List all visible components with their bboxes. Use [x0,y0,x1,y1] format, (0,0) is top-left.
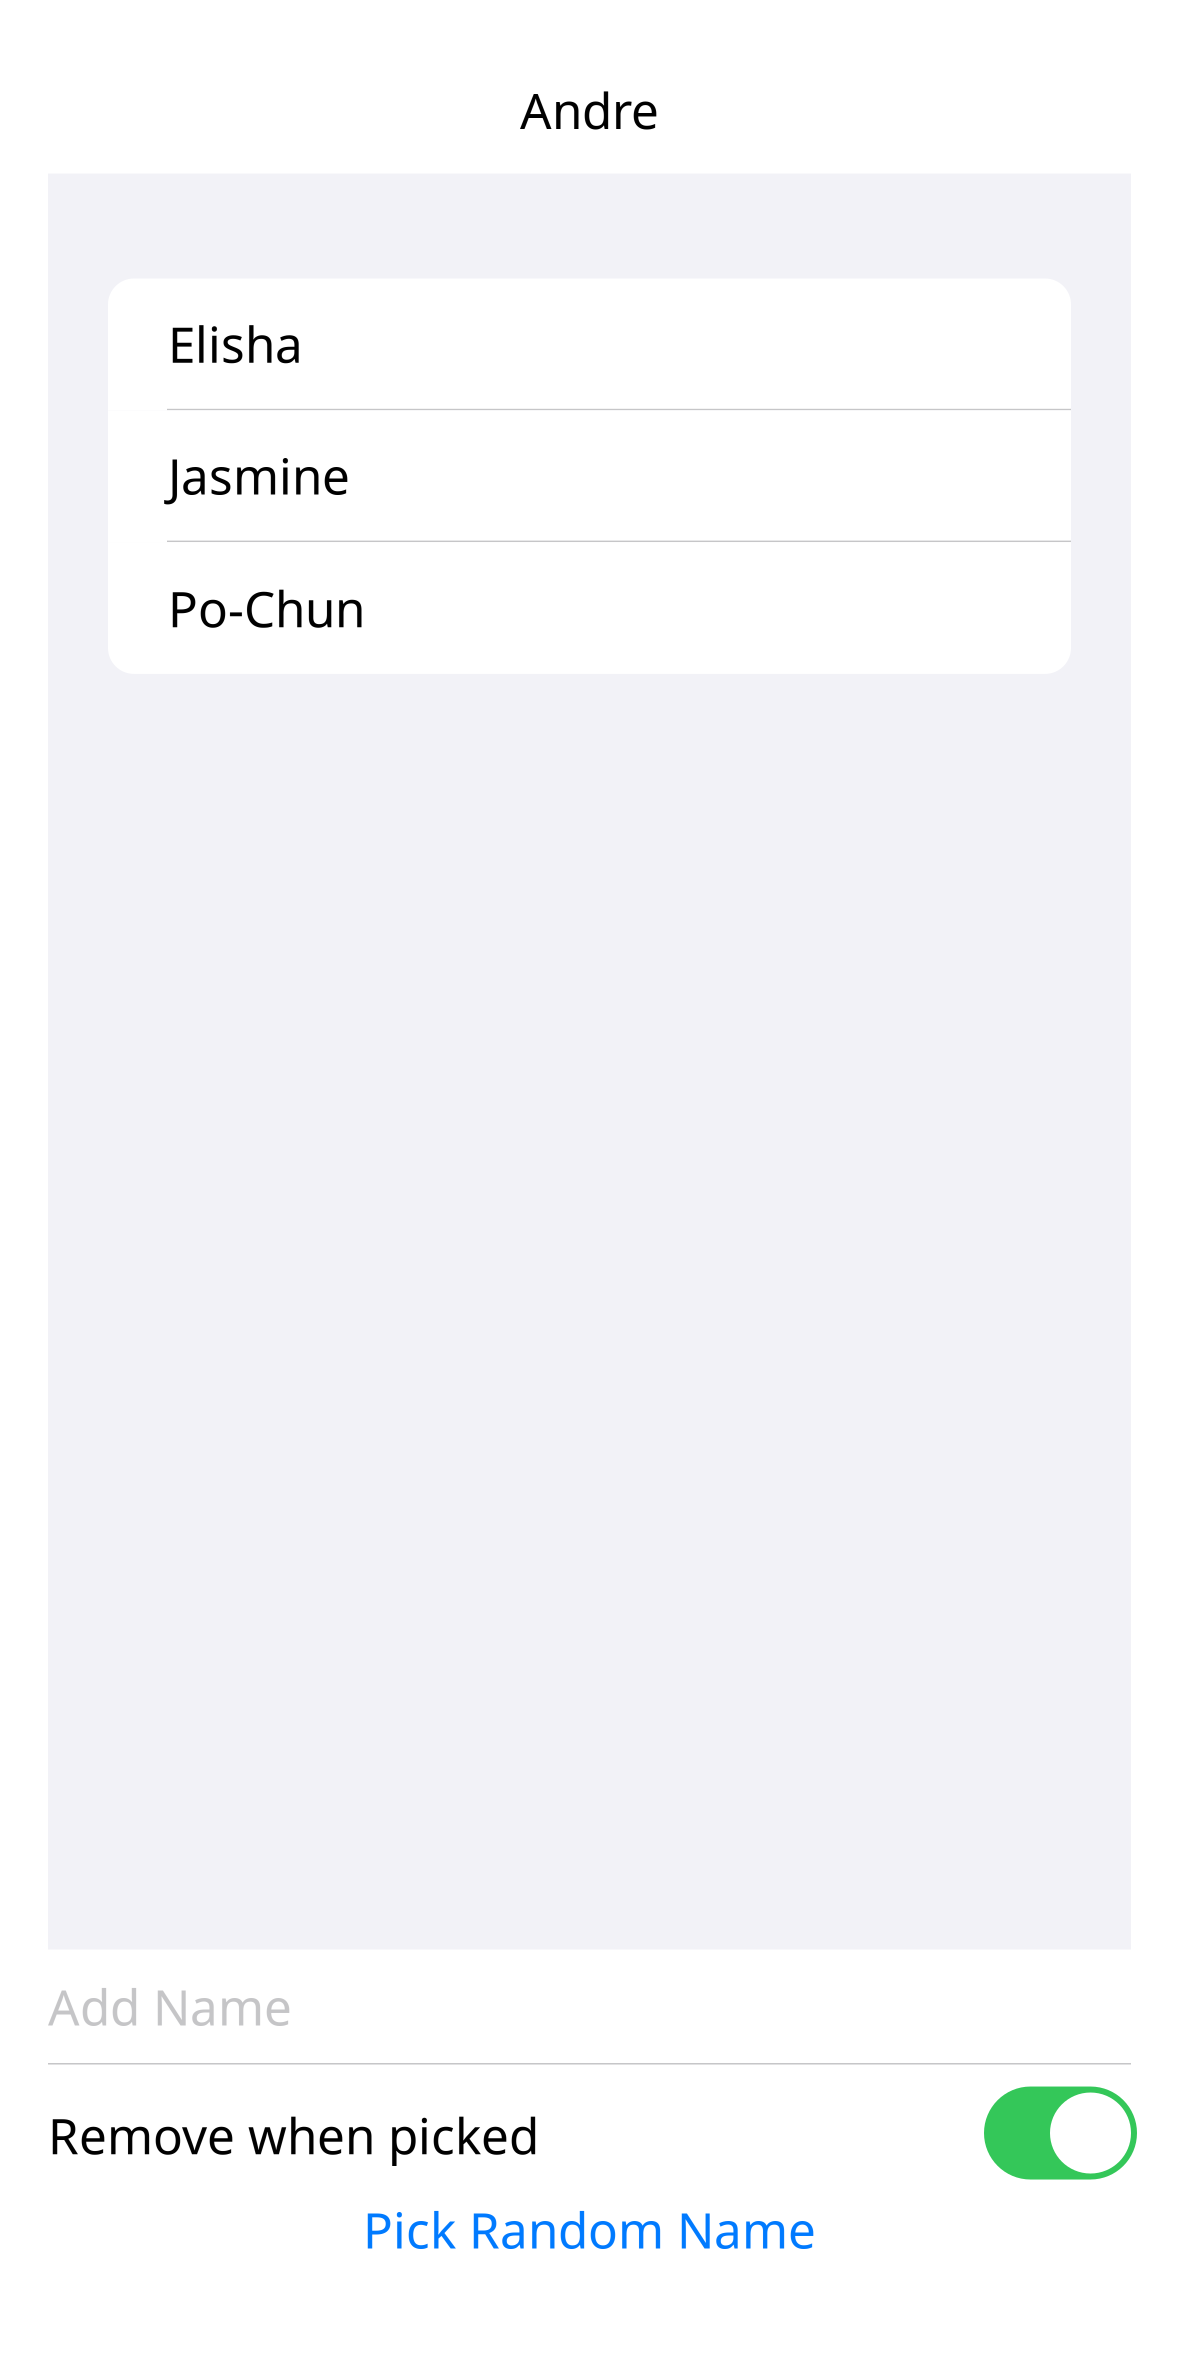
button[interactable]: Remove when picked [0,2064,1179,2179]
staticText: Jasmine [168,443,350,508]
staticText: Pick Random Name [363,2196,816,2262]
staticText: Elisha [168,311,303,376]
button[interactable]: Elisha [108,278,1071,410]
button[interactable]: Pick Random Name [0,2179,1179,2277]
staticText: Andre [520,77,659,142]
staticText: Remove when picked [48,2102,539,2168]
button[interactable]: Po-Chun [108,542,1071,674]
textField[interactable]: Add Name [0,1949,1179,2063]
button[interactable]: Jasmine [108,410,1071,542]
staticText: Add Name [48,1973,292,2039]
button[interactable]: Add Name [0,1949,1179,2063]
staticText: Po-Chun [168,575,365,641]
scrollView [48,173,1131,1949]
navigationBar: Andre [0,0,1179,173]
toggle[interactable]: Remove when picked [0,2064,1179,2179]
